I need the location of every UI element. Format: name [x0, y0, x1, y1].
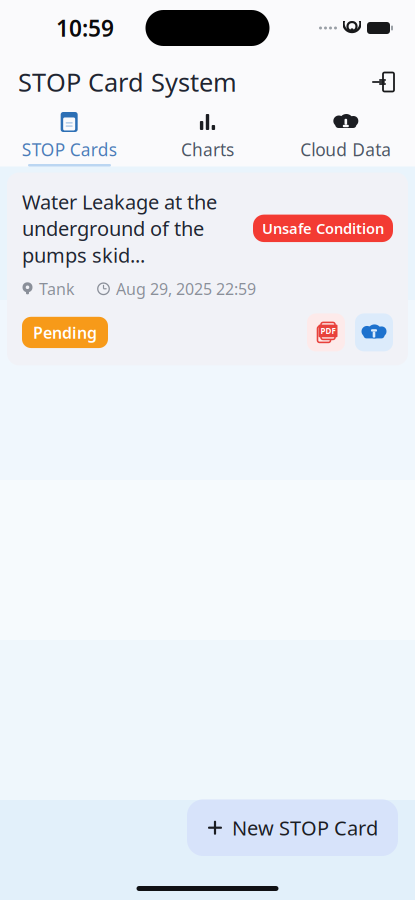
button[interactable]: Charts — [138, 103, 277, 169]
staticText: Charts — [181, 138, 234, 161]
staticText: STOP Card System — [18, 65, 237, 99]
staticText: PDF — [320, 326, 335, 336]
staticText: New STOP Card — [232, 814, 378, 841]
button[interactable]: Cloud Data — [277, 103, 415, 169]
staticText: Pending — [33, 322, 97, 343]
button[interactable]: Export PDF — [307, 313, 345, 351]
staticText: STOP Cards — [22, 138, 117, 161]
staticText: 10:59 — [56, 13, 114, 43]
button[interactable]: New STOP Card — [187, 799, 398, 856]
button[interactable]: Water Leakage at the underground of the … — [7, 172, 408, 365]
button[interactable]: Upload to cloud — [355, 313, 393, 351]
button[interactable]: Sign out — [363, 62, 403, 102]
staticText: Tank — [39, 278, 75, 299]
button[interactable]: STOP Cards — [0, 103, 138, 169]
staticText: Unsafe Condition — [262, 219, 384, 238]
staticText: Aug 29, 2025 22:59 — [116, 278, 256, 299]
staticText: Cloud Data — [300, 138, 391, 161]
staticText: Water Leakage at the underground of the … — [22, 188, 217, 268]
